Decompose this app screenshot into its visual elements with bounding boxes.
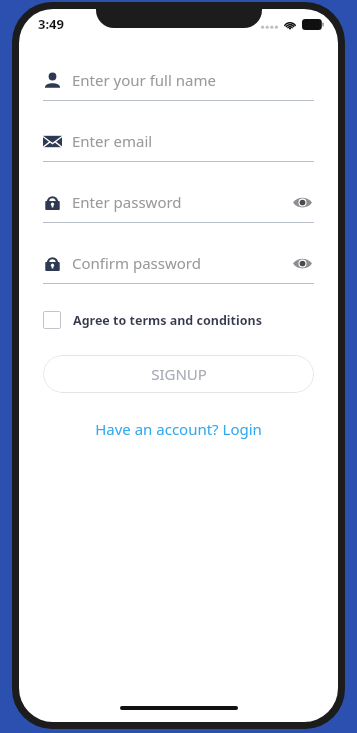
button[interactable]: Have an account? Login: [85, 415, 272, 443]
staticText: Enter password: [72, 192, 290, 212]
button[interactable]: Confirm password: [43, 250, 314, 284]
button[interactable]: SIGNUP: [43, 355, 314, 393]
button[interactable]: Enter email: [43, 128, 314, 162]
staticText: 3:49: [38, 15, 64, 33]
button[interactable]: Show password: [290, 251, 314, 275]
staticText: SIGNUP: [151, 364, 207, 384]
button[interactable]: Agree to terms and conditions: [43, 311, 314, 329]
staticText: Have an account? Login: [95, 419, 262, 439]
button[interactable]: Enter password: [43, 189, 314, 223]
staticText: Enter email: [72, 131, 314, 151]
button[interactable]: Show password: [290, 190, 314, 214]
button[interactable]: Enter your full name: [43, 67, 314, 101]
staticText: Agree to terms and conditions: [73, 312, 262, 329]
staticText: Confirm password: [72, 253, 290, 273]
staticText: Enter your full name: [72, 70, 314, 90]
